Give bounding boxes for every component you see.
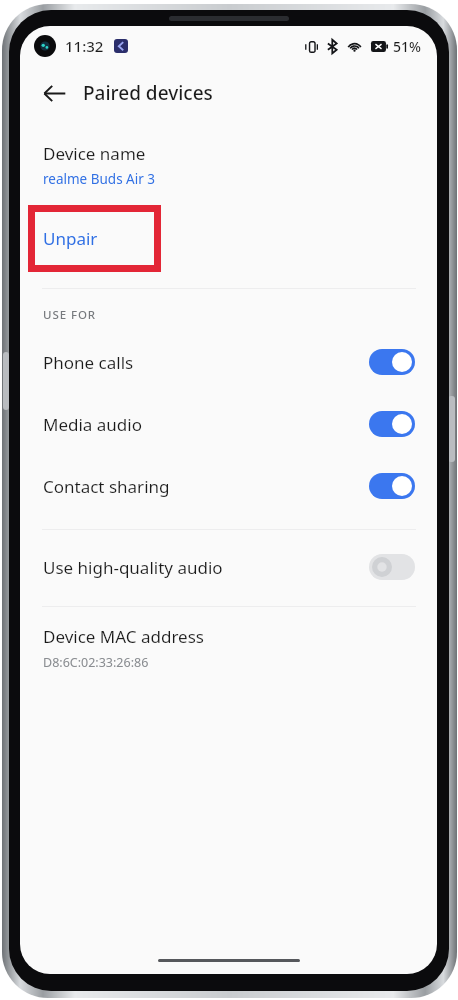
- staticText: Contact sharing: [43, 475, 369, 498]
- staticText: Phone calls: [43, 351, 369, 374]
- button[interactable]: On: [369, 349, 415, 375]
- staticText: Unpair: [43, 227, 98, 250]
- button[interactable]: Contact sharing: [20, 455, 437, 517]
- staticText: realme Buds Air 3: [43, 170, 156, 188]
- button[interactable]: On: [369, 411, 415, 437]
- button[interactable]: On: [369, 473, 415, 499]
- button[interactable]: Off: [369, 554, 415, 580]
- button[interactable]: Use high-quality audio: [20, 536, 437, 598]
- staticText: Use high-quality audio: [43, 556, 369, 579]
- staticText: Paired devices: [83, 80, 213, 106]
- button[interactable]: Unpair: [34, 211, 155, 266]
- staticText: Media audio: [43, 413, 369, 436]
- staticText: D8:6C:02:33:26:86: [43, 654, 149, 671]
- button[interactable]: Phone calls: [20, 331, 437, 393]
- staticText: 11:32: [65, 36, 104, 56]
- button[interactable]: Device name: [20, 138, 437, 192]
- staticText: Device MAC address: [43, 625, 204, 648]
- button[interactable]: Media audio: [20, 393, 437, 455]
- staticText: 51%: [393, 37, 421, 56]
- button[interactable]: Back: [33, 72, 75, 114]
- button[interactable]: Device MAC address: [20, 621, 437, 677]
- staticText: USE FOR: [43, 307, 97, 323]
- staticText: Device name: [43, 142, 146, 165]
